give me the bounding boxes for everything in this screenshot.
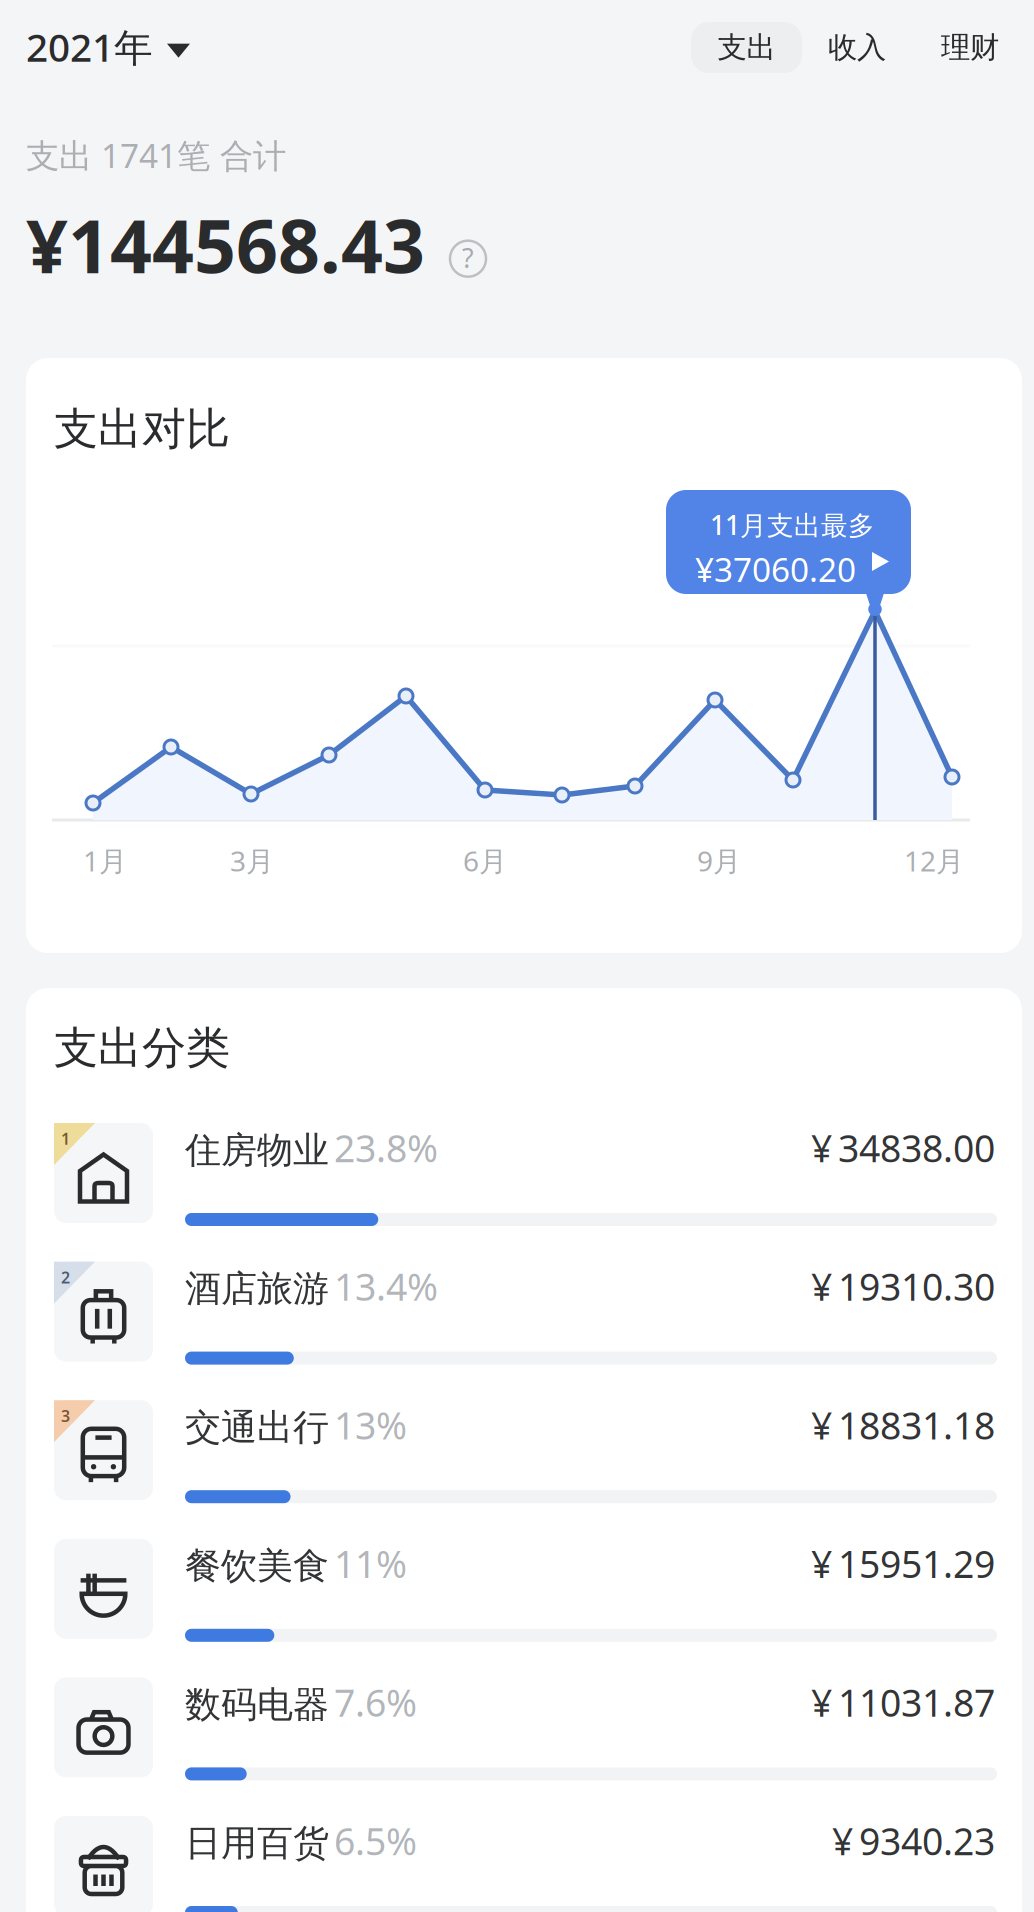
staticText: 餐饮美食 [185,1544,329,1588]
staticText: ¥ 18831.18 [811,1400,995,1450]
button[interactable]: 收入 [802,22,912,73]
staticText: 1月 [83,842,127,879]
staticText: ¥ 9340.23 [832,1816,995,1866]
staticText: 3 [61,1405,70,1426]
staticText: 住房物业 [185,1128,329,1172]
button[interactable]: 1 [26,1110,1022,1249]
staticText: 酒店旅游 [185,1267,329,1311]
staticText: 日用百货 [185,1821,329,1865]
button[interactable]: 金额说明 [445,222,491,268]
staticText: 23.8% [334,1123,438,1173]
staticText: ¥ 19310.30 [811,1262,995,1311]
staticText: 11% [334,1539,407,1588]
staticText: ¥ 15951.29 [811,1539,995,1588]
staticText: 支出 1741笔 合计 [26,133,286,177]
staticText: ¥ 11031.87 [811,1677,995,1727]
staticText: 支出分类 [54,1021,230,1075]
staticText: 13% [334,1400,407,1450]
staticText: 2021年 [26,21,153,72]
staticText: ¥144568.43 [26,196,425,293]
button[interactable]: 餐饮美食 [26,1526,1022,1664]
staticText: 支出 [717,29,775,65]
button[interactable]: 理财 [912,22,1028,73]
staticText: 支出对比 [54,402,230,456]
staticText: ? [462,240,474,275]
button[interactable]: 日用百货 [26,1803,1022,1912]
staticText: 3月 [230,842,274,879]
button[interactable]: 数码电器 [26,1664,1022,1803]
staticText: 6.5% [334,1816,417,1866]
staticText: 1 [61,1128,70,1149]
staticText: 理财 [941,29,999,65]
staticText: 12月 [904,842,964,879]
button[interactable]: 2021年 [0,7,210,86]
staticText: 2 [61,1267,70,1288]
staticText: 6月 [463,842,507,879]
button[interactable]: 2 [26,1249,1022,1387]
staticText: 11月支出最多 [710,507,875,542]
button[interactable]: 支出 [691,22,802,73]
staticText: ¥37060.20 [695,547,856,591]
staticText: 交通出行 [185,1405,329,1450]
staticText: 13.4% [334,1262,438,1311]
staticText: 数码电器 [185,1683,329,1727]
staticText: 9月 [697,842,741,879]
staticText: 收入 [828,29,886,65]
button[interactable]: 11月支出最多 [666,490,911,594]
staticText: ¥ 34838.00 [811,1123,995,1173]
staticText: 7.6% [334,1677,417,1727]
button[interactable]: 3 [26,1387,1022,1526]
